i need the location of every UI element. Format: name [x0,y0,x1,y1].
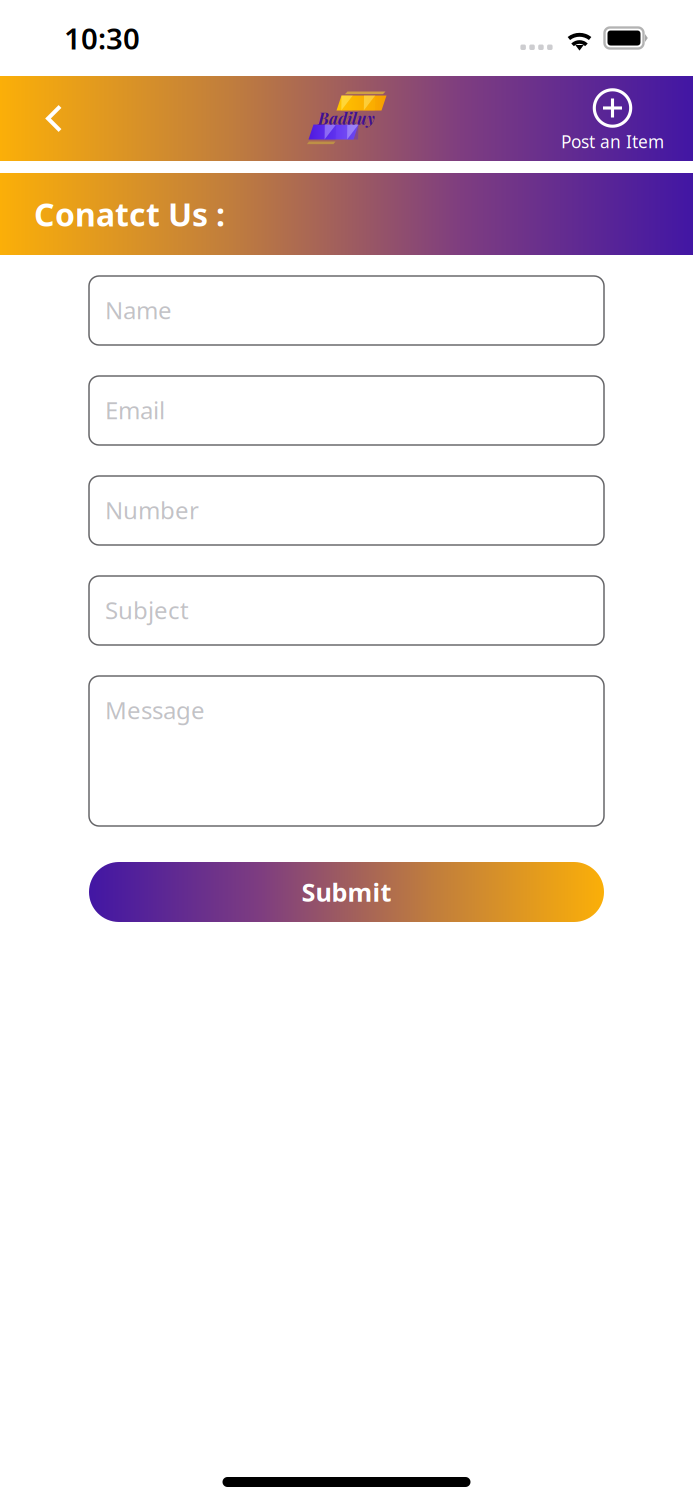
staticText: Name [105,294,172,326]
staticText: Badiluy [318,107,375,129]
staticText: Conatct Us : [34,193,225,235]
button[interactable]: Post an Item [561,76,693,161]
button[interactable]: Subject [89,576,604,645]
button[interactable]: Message [89,676,604,826]
staticText: Message [105,694,205,726]
staticText: 10:30 [64,18,140,57]
staticText: Subject [105,594,189,626]
button[interactable]: Email [89,376,604,445]
staticText: Email [105,394,165,426]
staticText: Number [105,494,199,526]
button[interactable]: Number [89,476,604,545]
staticText: Submit [301,875,391,909]
button[interactable]: Name [89,276,604,345]
button[interactable]: Submit [89,862,604,922]
staticText: Post an Item [561,130,664,153]
button[interactable]: Back [0,76,93,161]
